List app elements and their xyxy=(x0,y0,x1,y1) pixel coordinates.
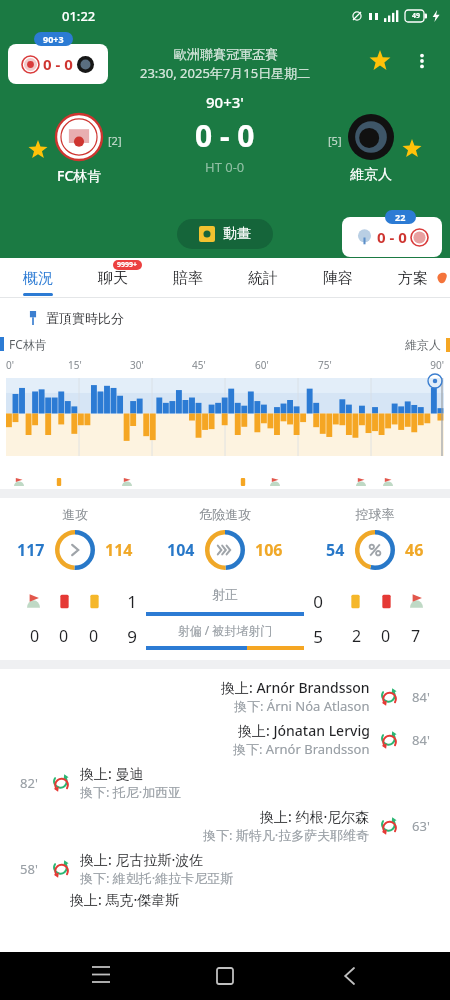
staticText: 控球率 xyxy=(300,506,450,522)
staticText: 46 xyxy=(405,539,424,561)
staticText: 106 xyxy=(255,539,283,561)
staticText: 0' xyxy=(6,358,68,372)
button[interactable]: 換上: 约根·尼尔森 xyxy=(0,804,450,847)
staticText: 117 xyxy=(17,539,45,561)
staticText: 15' xyxy=(68,358,130,372)
staticText: 45' xyxy=(192,358,255,372)
staticText: 84' xyxy=(404,688,438,706)
staticText: 歐洲聯賽冠軍盃賽 xyxy=(174,46,278,62)
staticText: 概況 xyxy=(23,269,53,288)
button[interactable]: Back xyxy=(326,952,374,1000)
button[interactable]: Recents xyxy=(77,952,125,1000)
staticText: 2 xyxy=(352,625,362,647)
staticText: 置頂實時比分 xyxy=(46,310,124,326)
button[interactable]: 方案 xyxy=(375,258,450,298)
staticText: 聊天 xyxy=(98,269,128,288)
staticText: 9999+ xyxy=(117,260,138,270)
staticText: 射正 xyxy=(212,586,238,602)
button[interactable]: 概況 xyxy=(0,258,75,298)
staticText: 84' xyxy=(404,731,438,749)
staticText: 30' xyxy=(130,358,192,372)
button[interactable]: Favourite xyxy=(362,43,398,79)
staticText: 統計 xyxy=(248,269,278,288)
staticText: 9 xyxy=(118,625,146,648)
button[interactable]: 0 - 0 xyxy=(8,44,108,84)
staticText: FC林肯 xyxy=(57,166,102,185)
button[interactable]: 0 - 0 xyxy=(342,217,442,257)
staticText: 換下: 托尼·加西亚 xyxy=(80,783,182,801)
staticText: 0 xyxy=(304,590,332,613)
staticText: 114 xyxy=(105,539,133,561)
button[interactable]: 換上: Jónatan Lervig xyxy=(0,718,450,761)
button[interactable]: 置頂實時比分 xyxy=(14,303,136,333)
button[interactable]: More options xyxy=(404,43,440,79)
button[interactable]: 統計 xyxy=(225,258,300,298)
staticText: 104 xyxy=(167,539,195,561)
staticText: 0 - 0 xyxy=(377,227,407,247)
staticText: 危險進攻 xyxy=(150,506,300,522)
staticText: 換下: Arnór Brandsson xyxy=(233,740,370,758)
staticText: 射偏 / 被封堵射门 xyxy=(146,622,304,638)
staticText: 進攻 xyxy=(0,506,150,522)
button[interactable]: 賠率 xyxy=(150,258,225,298)
staticText: 22 xyxy=(395,211,406,223)
button[interactable]: 82' xyxy=(0,761,450,804)
staticText: 換上: 尼古拉斯·波佐 xyxy=(80,850,204,869)
staticText: 0 - 0 xyxy=(43,54,73,74)
staticText: 0 - 0 xyxy=(195,115,255,156)
staticText: 90' xyxy=(381,358,444,372)
staticText: 23:30, 2025年7月15日星期二 xyxy=(140,64,311,82)
button[interactable]: Home xyxy=(201,952,249,1000)
staticText: 0 xyxy=(89,625,99,647)
staticText: FC林肯 xyxy=(9,336,47,352)
staticText: 5 xyxy=(304,625,332,648)
staticText: 01:22 xyxy=(62,7,96,25)
staticText: 陣容 xyxy=(323,269,353,288)
staticText: 90+3' xyxy=(206,92,244,112)
staticText: 換下: 維剋托·維拉卡尼亞斯 xyxy=(80,869,234,887)
staticText: 方案 xyxy=(398,269,428,288)
staticText: 換上: 曼迪 xyxy=(80,764,144,783)
staticText: 換上: Jónatan Lervig xyxy=(238,721,370,740)
staticText: 60' xyxy=(255,358,318,372)
staticText: 0 xyxy=(59,625,69,647)
staticText: 54 xyxy=(326,539,345,561)
staticText: 7 xyxy=(411,625,421,647)
staticText: [2] xyxy=(108,133,122,148)
staticText: 換下: 斯特凡·拉多萨夫耶维奇 xyxy=(203,826,370,844)
staticText: 63' xyxy=(404,817,438,835)
staticText: 換下: Árni Nóa Atlason xyxy=(234,697,370,715)
staticText: 75' xyxy=(318,358,381,372)
button[interactable]: 聊天 xyxy=(75,258,150,298)
staticText: 換上: 馬克·傑韋斯 xyxy=(70,890,180,909)
staticText: 1 xyxy=(118,590,146,613)
staticText: 82' xyxy=(12,774,46,792)
staticText: 換上: 约根·尼尔森 xyxy=(260,807,370,826)
button[interactable]: 陣容 xyxy=(300,258,375,298)
staticText: 換上: Arnór Brandsson xyxy=(221,678,370,697)
staticText: 0 xyxy=(30,625,40,647)
staticText: 賠率 xyxy=(173,269,203,288)
staticText: 58' xyxy=(12,860,46,878)
staticText: 動畫 xyxy=(223,225,251,243)
staticText: 90+3 xyxy=(43,33,64,45)
button[interactable]: 動畫 xyxy=(177,219,273,249)
staticText: HT 0-0 xyxy=(205,158,245,176)
button[interactable]: 58' xyxy=(0,847,450,890)
button[interactable]: 換上: Arnór Brandsson xyxy=(0,675,450,718)
staticText: 維京人 xyxy=(350,166,392,184)
staticText: 維京人 xyxy=(405,337,441,352)
staticText: 49 xyxy=(412,11,421,21)
staticText: [5] xyxy=(328,133,342,148)
staticText: 0 xyxy=(381,625,391,647)
